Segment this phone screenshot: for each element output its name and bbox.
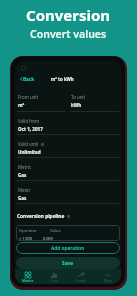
- staticText: Back: [23, 76, 35, 82]
- staticText: Gas: [18, 195, 27, 201]
- button[interactable]: Operator: [16, 225, 120, 241]
- staticText: × 1,000: [19, 236, 32, 241]
- button[interactable]: Valid until: [15, 135, 121, 158]
- staticText: Valid until: [18, 141, 39, 147]
- button[interactable]: Save: [16, 257, 120, 269]
- staticText: Conversion pipeline: [17, 213, 65, 220]
- button[interactable]: Valid from: [15, 112, 121, 135]
- button[interactable]: More: [94, 269, 121, 284]
- staticText: Convert values: [30, 27, 107, 41]
- button[interactable]: Metric: [15, 158, 121, 181]
- staticText: Costs: [50, 279, 59, 283]
- button[interactable]: Metrics: [15, 269, 41, 284]
- staticText: m² to kWh: [51, 76, 74, 82]
- button[interactable]: Costs: [41, 269, 67, 284]
- staticText: To unit: [71, 94, 86, 100]
- staticText: kWh: [71, 102, 82, 108]
- button[interactable]: Meter: [15, 181, 121, 204]
- staticText: More: [104, 279, 112, 283]
- button[interactable]: Add operation: [16, 242, 120, 254]
- staticText: Trends: [75, 279, 86, 283]
- staticText: From unit: [18, 94, 39, 100]
- staticText: Unlimited: [18, 149, 41, 155]
- staticText: Meter: [18, 187, 31, 193]
- staticText: Oct 1, 2017: [18, 126, 43, 132]
- staticText: m²: [18, 102, 25, 108]
- staticText: Value: [50, 228, 61, 234]
- staticText: Gas: [18, 172, 27, 178]
- staticText: 0.009: [43, 236, 53, 241]
- staticText: Conversion: [26, 5, 111, 25]
- staticText: Valid from: [18, 118, 40, 124]
- staticText: Save: [62, 260, 74, 267]
- button[interactable]: Back: [15, 76, 37, 82]
- button[interactable]: From unit: [15, 88, 68, 112]
- button[interactable]: Trends: [67, 269, 94, 284]
- staticText: Metrics: [22, 279, 34, 283]
- staticText: Operator: [19, 228, 37, 234]
- staticText: Metric: [18, 164, 32, 170]
- button[interactable]: To unit: [68, 88, 121, 112]
- staticText: Add operation: [51, 245, 85, 252]
